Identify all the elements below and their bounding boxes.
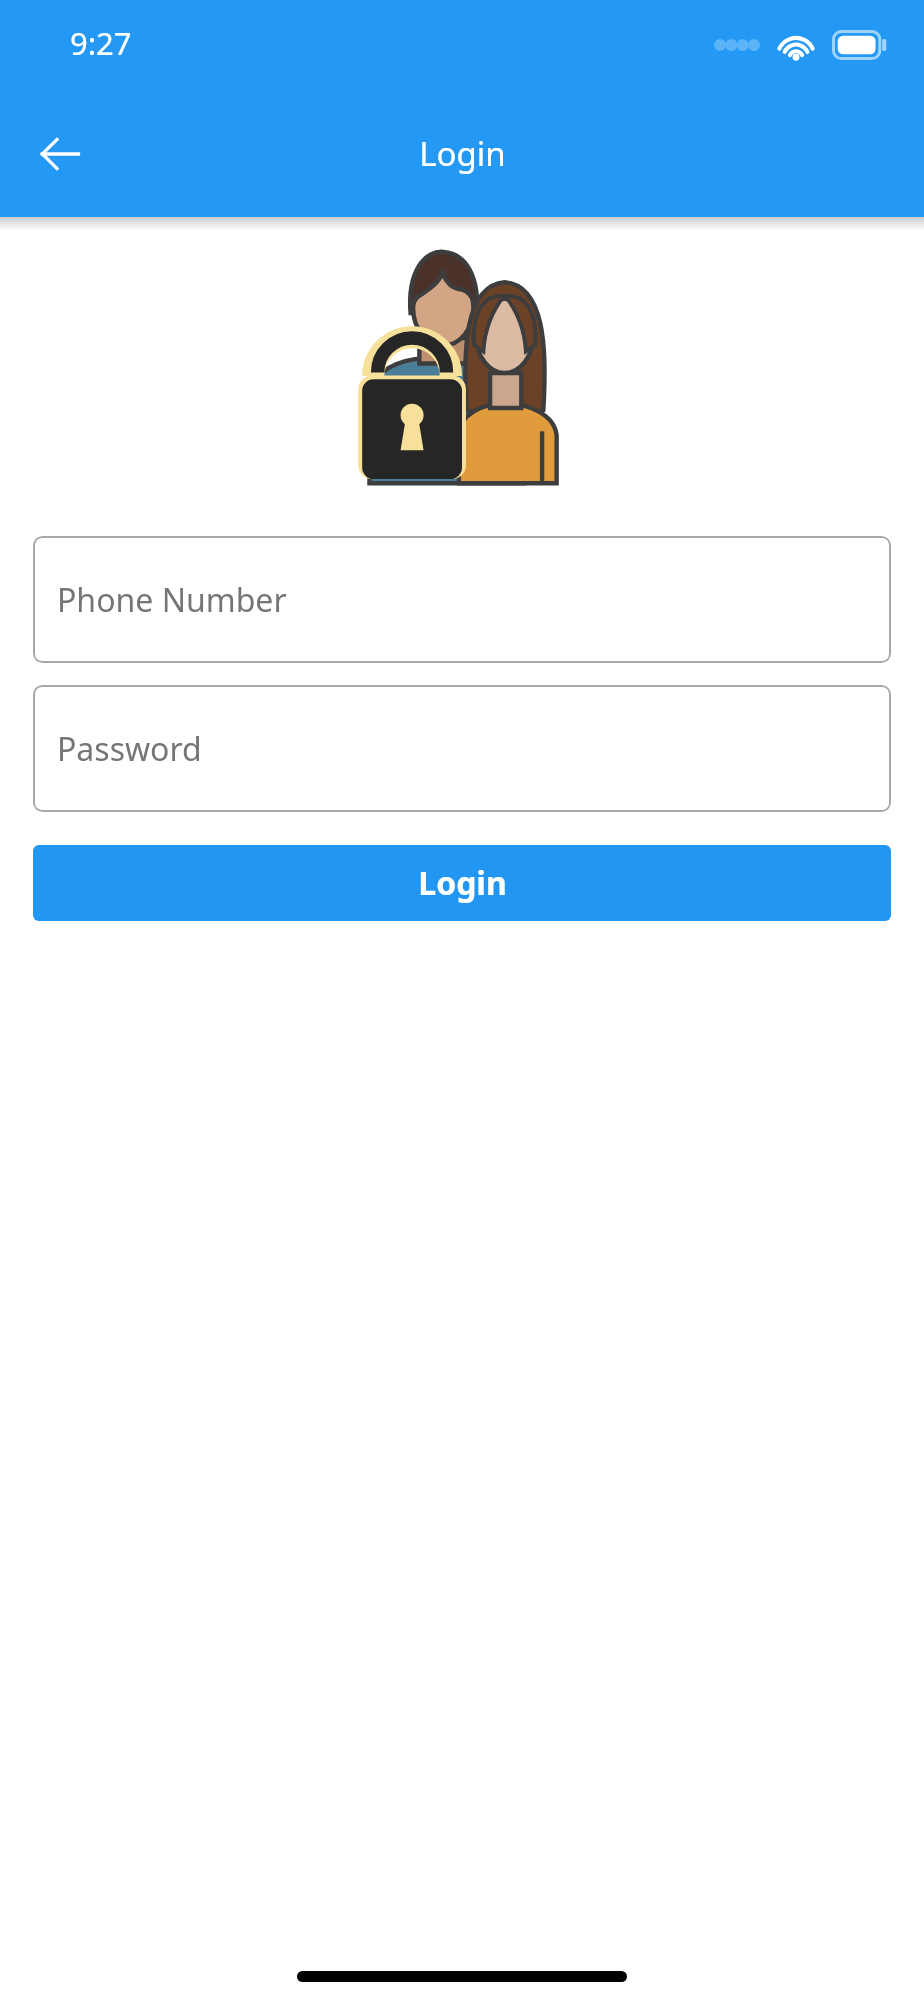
- button[interactable]: Phone Number: [33, 536, 891, 663]
- staticText: Login: [419, 131, 506, 176]
- staticText: Login: [418, 861, 507, 905]
- staticText: Password: [57, 727, 202, 771]
- button[interactable]: Back: [24, 118, 96, 190]
- staticText: 9:27: [70, 22, 132, 64]
- button[interactable]: Login: [33, 845, 891, 921]
- button[interactable]: Password: [33, 685, 891, 812]
- staticText: Phone Number: [57, 578, 287, 622]
